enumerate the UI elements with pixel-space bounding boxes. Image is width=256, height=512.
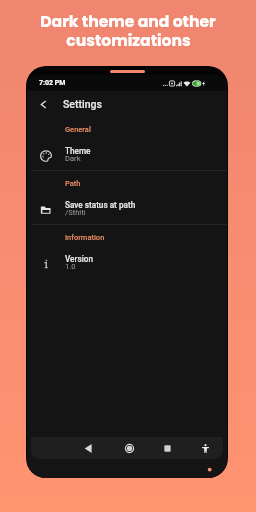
staticText: General: [65, 125, 91, 134]
button[interactable]: Version: [27, 249, 227, 278]
staticText: 7:02 PM: [39, 79, 66, 87]
button[interactable]: Back: [34, 95, 52, 113]
button[interactable]: Home: [119, 438, 139, 458]
staticText: Path: [65, 179, 81, 188]
button[interactable]: Recents: [157, 438, 177, 458]
button[interactable]: Theme: [27, 141, 227, 170]
button[interactable]: Accessibility: [195, 438, 215, 458]
staticText: Information: [65, 233, 105, 242]
staticText: Theme: [65, 146, 91, 156]
staticText: Dark theme and other: [40, 11, 216, 33]
staticText: Version: [65, 254, 93, 264]
staticText: customizations: [66, 30, 191, 52]
button[interactable]: Back: [78, 438, 98, 458]
button[interactable]: Save status at path: [27, 195, 227, 224]
staticText: Dark: [65, 154, 81, 163]
staticText: 1.0: [65, 262, 76, 271]
staticText: Save status at path: [65, 200, 136, 210]
staticText: Settings: [63, 98, 102, 110]
staticText: /Sthiti: [65, 208, 86, 217]
